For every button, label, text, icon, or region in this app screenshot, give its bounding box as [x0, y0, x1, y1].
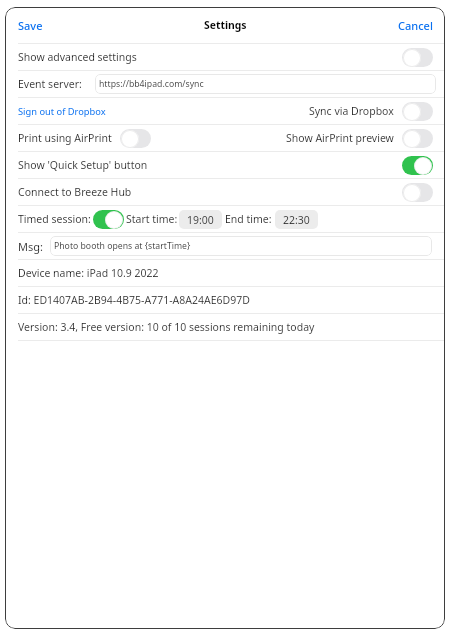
staticText: Version: 3.4, Free version: 10 of 10 ses…: [18, 320, 315, 334]
staticText: Sync via Dropbox: [309, 104, 394, 118]
button[interactable]: Show advanced settings: [402, 48, 433, 67]
button[interactable]: 22:30: [275, 210, 318, 229]
button[interactable]: Photo booth opens at {startTime}: [50, 236, 432, 256]
button[interactable]: Show Quick Setup button: [402, 156, 433, 175]
staticText: Event server:: [18, 77, 82, 91]
button[interactable]: Show AirPrint preview: [402, 129, 433, 148]
button[interactable]: Print using AirPrint: [120, 129, 151, 148]
staticText: Timed session:: [18, 212, 91, 226]
staticText: https://bb4ipad.com/sync: [99, 78, 204, 90]
button[interactable]: Sign out of Dropbox: [18, 105, 106, 118]
staticText: Photo booth opens at {startTime}: [54, 240, 191, 252]
button[interactable]: Timed session: [93, 210, 124, 229]
button[interactable]: 19:00: [179, 210, 222, 229]
staticText: Device name: iPad 10.9 2022: [18, 266, 159, 280]
staticText: Sign out of Dropbox: [18, 105, 106, 118]
staticText: 19:00: [187, 213, 214, 227]
staticText: Show advanced settings: [18, 50, 137, 64]
staticText: Settings: [204, 18, 247, 32]
staticText: Connect to Breeze Hub: [18, 185, 132, 199]
staticText: Save: [18, 18, 43, 33]
staticText: Start time:: [126, 212, 178, 226]
staticText: End time:: [225, 212, 272, 226]
staticText: Show 'Quick Setup' button: [18, 158, 148, 172]
button[interactable]: Cancel: [398, 18, 433, 33]
button[interactable]: https://bb4ipad.com/sync: [95, 74, 436, 94]
button[interactable]: Sync via Dropbox: [402, 102, 433, 121]
staticText: 22:30: [283, 213, 310, 227]
staticText: Msg:: [18, 239, 43, 254]
button[interactable]: Connect to Breeze Hub: [402, 183, 433, 202]
staticText: Show AirPrint preview: [286, 131, 394, 145]
staticText: Print using AirPrint: [18, 131, 112, 145]
staticText: Cancel: [398, 18, 433, 33]
staticText: Id: ED1407AB-2B94-4B75-A771-A8A24AE6D97D: [18, 293, 250, 307]
button[interactable]: Save: [18, 18, 43, 33]
